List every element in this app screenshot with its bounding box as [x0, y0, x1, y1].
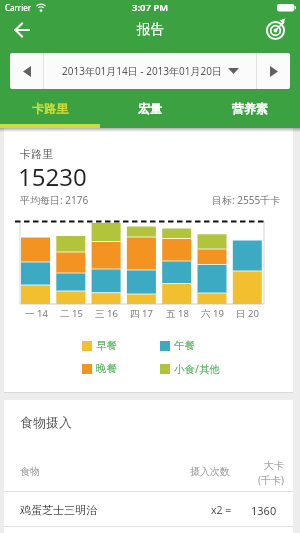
staticText: 大卡 — [264, 459, 284, 472]
staticText: 晚餐 — [96, 362, 117, 375]
staticText: 五 18 — [166, 307, 189, 320]
staticText: 宏量 — [138, 101, 162, 116]
button[interactable] — [262, 14, 292, 44]
staticText: 3:07 PM — [132, 1, 169, 14]
staticText: 四 17 — [130, 307, 153, 320]
button[interactable] — [6, 16, 38, 44]
staticText: 卡路里 — [20, 147, 53, 161]
staticText: 卡路里 — [32, 101, 68, 116]
staticText: 15230 — [18, 160, 87, 193]
staticText: 二 15 — [60, 307, 83, 320]
staticText: 小食/其他 — [174, 362, 220, 376]
button[interactable]: 2013年01月14日 - 2013年01月20日 — [44, 53, 256, 89]
button[interactable] — [257, 53, 290, 89]
button[interactable]: 宏量 — [100, 89, 200, 128]
staticText: 报告 — [137, 21, 164, 38]
staticText: 摄入次数 — [190, 465, 230, 478]
staticText: 鸡蛋芝士三明治 — [20, 503, 97, 517]
button[interactable]: 鸡蛋芝士三明治 — [4, 492, 293, 526]
staticText: 早餐 — [96, 339, 117, 352]
button[interactable] — [10, 53, 43, 89]
staticText: Carrier — [5, 2, 32, 13]
staticText: 日 20 — [236, 307, 259, 320]
staticText: 三 16 — [95, 307, 118, 320]
staticText: 平均每日: 2176 — [20, 193, 89, 207]
staticText: 午餐 — [174, 339, 195, 352]
button[interactable]: 营养素 — [200, 89, 300, 128]
staticText: 2013年01月14日 - 2013年01月20日 — [62, 64, 222, 78]
staticText: 1360 — [251, 503, 277, 518]
button[interactable]: 卡路里 — [0, 89, 100, 128]
staticText: 目标: 2555千卡 — [212, 193, 281, 207]
staticText: 营养素 — [232, 101, 268, 116]
staticText: 食物摄入 — [20, 414, 72, 430]
staticText: 六 19 — [201, 307, 224, 320]
staticText: 食物 — [20, 465, 40, 478]
staticText: (千卡) — [258, 473, 284, 487]
staticText: x2 = — [211, 503, 232, 517]
staticText: 一 14 — [25, 307, 48, 320]
